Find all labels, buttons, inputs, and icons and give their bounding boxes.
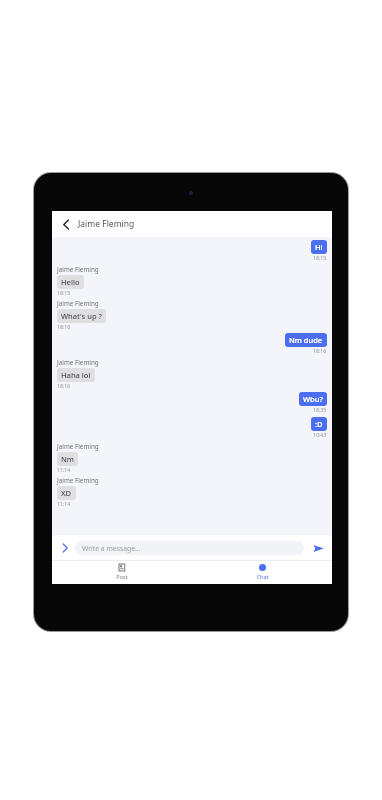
staticText: Jaime Fleming [78,218,135,230]
staticText: Haha lol [61,370,91,380]
staticText: Post [116,573,128,581]
staticText: 11:14 [57,466,71,473]
staticText: 18:16 [313,347,327,354]
button[interactable]: Send [310,540,326,556]
button[interactable]: Hi [311,240,327,254]
staticText: Nm dude [289,335,323,345]
staticText: Jaime Fleming [57,299,99,308]
button[interactable]: Attach [58,541,72,555]
staticText: Jaime Fleming [57,476,99,485]
button[interactable]: Post [92,560,152,584]
staticText: 18:15 [57,289,71,296]
staticText: What's up ? [61,311,102,321]
staticText: XD [61,488,72,498]
button[interactable]: Haha lol [57,368,95,382]
button[interactable]: XD [57,486,76,500]
staticText: Nm [61,454,74,464]
button[interactable]: Back [58,216,74,232]
staticText: Jaime Fleming [57,265,99,274]
staticText: Jaime Fleming [57,358,99,367]
staticText: Chat [256,573,269,581]
staticText: 18:16 [57,382,71,389]
button[interactable]: :D [311,417,327,431]
staticText: Write a message... [82,544,141,553]
staticText: :D [315,419,323,429]
button[interactable]: What's up ? [57,309,106,323]
staticText: 18:15 [313,254,327,261]
staticText: 18:16 [57,323,71,330]
button[interactable]: Hello [57,275,84,289]
staticText: Hi [315,242,323,252]
staticText: Wbu? [303,394,323,404]
staticText: Jaime Fleming [57,442,99,451]
button[interactable]: Write a message... [75,541,304,555]
button[interactable]: Nm dude [285,333,327,347]
button[interactable]: Chat [232,560,292,584]
staticText: Hello [61,277,80,287]
staticText: 10:43 [313,431,327,438]
button[interactable]: Nm [57,452,78,466]
button[interactable]: Wbu? [299,392,327,406]
staticText: 18:35 [313,406,327,413]
staticText: 11:14 [57,500,71,507]
